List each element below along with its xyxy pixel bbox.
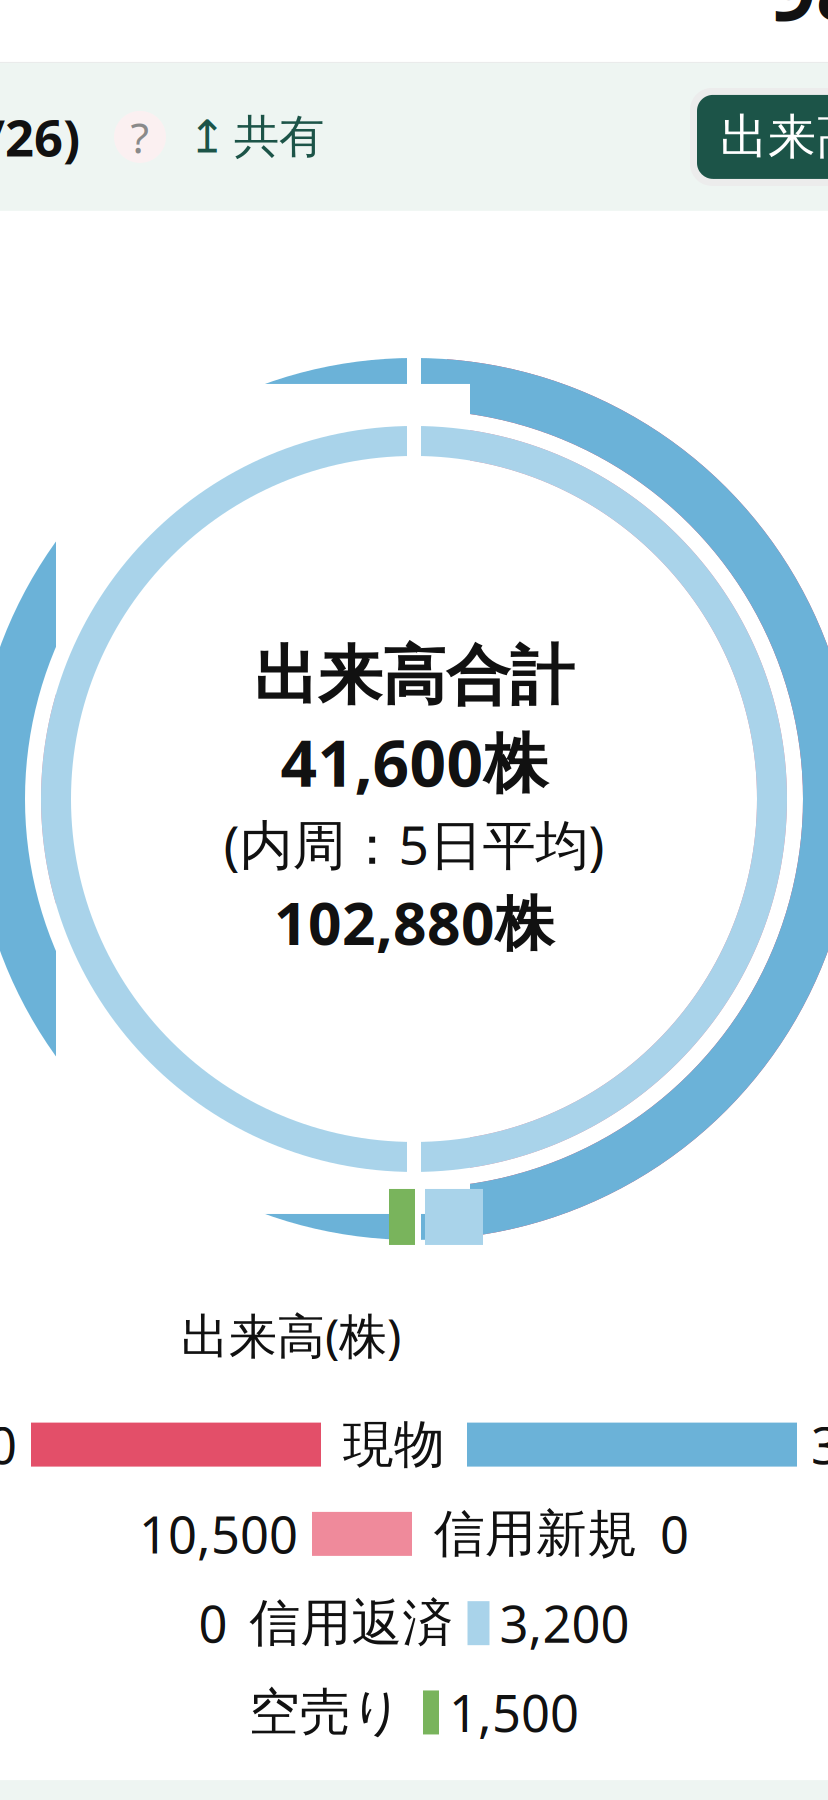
staticText: 共有 [234, 109, 324, 165]
staticText: 31,100 [0, 1411, 17, 1478]
staticText: ↥ [188, 111, 226, 163]
staticText: 0 [198, 1589, 227, 1657]
staticText: (内周：5日平均) [223, 808, 604, 879]
staticText: 41,600株 [280, 719, 547, 804]
staticText: 10,500 [139, 1500, 298, 1567]
staticText: 空売り [249, 1681, 403, 1743]
staticText: 出来高合計 [254, 637, 574, 715]
staticText: 出来高(株) [181, 1303, 401, 1367]
staticText: 986 [769, 0, 828, 43]
staticText: 36,900 [811, 1411, 828, 1478]
staticText: 現物 [343, 1413, 445, 1476]
staticText: ? [130, 109, 149, 165]
staticText: 3,200 [499, 1589, 629, 1657]
staticText: 1,500 [449, 1679, 579, 1746]
staticText: 出来高 [720, 107, 828, 166]
button[interactable]: 出来高 [697, 95, 828, 179]
button[interactable]: ヘルプ [114, 111, 166, 163]
staticText: 102,880株 [274, 883, 554, 961]
staticText: 信用新規 [434, 1503, 638, 1565]
staticText: 0 [660, 1500, 689, 1567]
staticText: 信用返済 [249, 1592, 453, 1654]
staticText: 売買内訳(2/26) [0, 103, 80, 171]
button[interactable]: ↥ [188, 107, 324, 167]
